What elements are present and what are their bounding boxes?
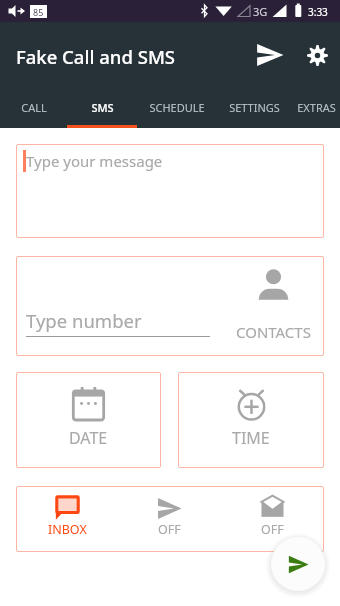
button[interactable]: OFF [118, 495, 221, 520]
button[interactable]: Settings [294, 32, 340, 78]
button[interactable]: Send message [271, 537, 325, 591]
staticText: CALL [21, 100, 47, 115]
staticText: Type number [26, 308, 142, 333]
staticText: CONTACTS [236, 322, 311, 342]
staticText: OFF [158, 521, 181, 538]
button[interactable]: OFF [221, 495, 324, 518]
button[interactable]: DATE [16, 372, 161, 468]
button[interactable]: SCHEDULE [137, 88, 216, 128]
staticText: Fake Call and SMS [16, 44, 176, 69]
staticText: Type your message [26, 151, 163, 171]
staticText: 85 [33, 6, 44, 18]
button[interactable]: EXTRAS [292, 88, 340, 128]
button[interactable]: Type your message [16, 144, 324, 238]
button[interactable]: Send [246, 31, 294, 79]
button[interactable]: SMS [67, 88, 137, 128]
button[interactable]: INBOX [16, 495, 118, 520]
staticText: OFF [261, 521, 284, 538]
button[interactable]: Type number [26, 308, 210, 337]
staticText: SCHEDULE [149, 100, 205, 115]
staticText: INBOX [48, 521, 87, 538]
staticText: TIME [232, 427, 270, 449]
button[interactable]: SETTINGS [216, 88, 292, 128]
button[interactable]: CONTACTS [215, 269, 331, 342]
button[interactable]: CALL [0, 88, 67, 128]
staticText: 3:33 [308, 5, 328, 19]
staticText: DATE [69, 427, 108, 449]
staticText: SMS [91, 100, 114, 115]
staticText: 3G [253, 4, 268, 19]
button[interactable]: TIME [178, 372, 324, 468]
staticText: SETTINGS [229, 100, 280, 115]
staticText: EXTRAS [297, 100, 336, 115]
